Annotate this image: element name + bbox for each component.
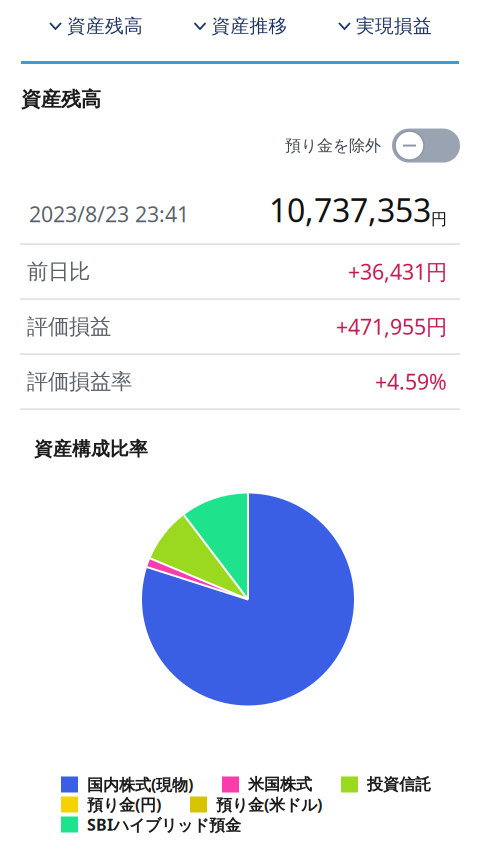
staticText: +36,431円 — [348, 257, 447, 286]
button[interactable]: 資産推移 — [194, 14, 287, 37]
staticText: 預り金(円) — [87, 794, 161, 815]
staticText: 投資信託 — [367, 775, 431, 794]
staticText: 10,737,353 — [269, 189, 431, 231]
staticText: 前日比 — [27, 258, 90, 285]
button[interactable]: 資産残高 — [50, 14, 143, 37]
staticText: 資産残高 — [21, 87, 101, 112]
staticText: SBIハイブリッド預金 — [87, 814, 241, 835]
staticText: 米国株式 — [248, 775, 312, 794]
staticText: 国内株式(現物) — [87, 774, 193, 795]
staticText: 2023/8/23 23:41 — [29, 200, 189, 228]
button[interactable]: 評価損益率 — [0, 355, 480, 410]
staticText: 資産構成比率 — [34, 438, 148, 460]
staticText: 預り金(米ドル) — [216, 794, 322, 815]
staticText: 資産残高 — [67, 14, 143, 37]
staticText: 円 — [431, 209, 447, 229]
button[interactable]: 評価損益 — [0, 300, 480, 355]
button[interactable]: 預り金を除外 — [392, 129, 460, 163]
staticText: 資産推移 — [211, 14, 287, 37]
staticText: 実現損益 — [356, 14, 432, 37]
staticText: +4.59% — [375, 367, 447, 396]
staticText: 評価損益 — [27, 313, 111, 340]
button[interactable]: 実現損益 — [339, 14, 432, 37]
staticText: 預り金を除外 — [285, 136, 381, 155]
button[interactable]: 前日比 — [0, 245, 480, 300]
staticText: +471,955円 — [336, 312, 447, 341]
staticText: 評価損益率 — [27, 368, 132, 395]
